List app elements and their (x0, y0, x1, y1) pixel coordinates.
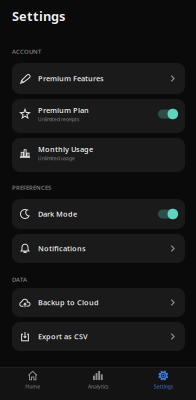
staticText: Notifications (38, 243, 86, 253)
button[interactable]: Dark Mode (158, 208, 178, 219)
staticText: Premium Features (38, 73, 104, 83)
button[interactable]: Analytics (65, 368, 131, 392)
button[interactable]: Monthly Usage (12, 138, 185, 172)
button[interactable]: Premium Features (12, 63, 185, 94)
button[interactable]: Dark Mode (12, 199, 185, 229)
staticText: PREFERENCES (12, 183, 51, 192)
button[interactable]: Settings (131, 368, 196, 392)
staticText: Unlimited usage (38, 155, 75, 162)
button[interactable]: Home (0, 368, 65, 392)
staticText: Analytics (88, 383, 108, 390)
button[interactable]: Notifications (12, 234, 185, 263)
staticText: Dark Mode (38, 209, 77, 219)
button[interactable]: Backup to Cloud (12, 288, 185, 317)
staticText: DATA (12, 275, 27, 284)
button[interactable]: Export as CSV (12, 322, 185, 351)
staticText: Export as CSV (38, 331, 88, 341)
staticText: ACCOUNT (12, 47, 41, 56)
button[interactable]: Premium Plan (12, 99, 185, 133)
staticText: Settings (12, 7, 65, 25)
staticText: Monthly Usage (38, 144, 93, 154)
staticText: Settings (154, 383, 173, 390)
staticText: Home (25, 383, 40, 390)
staticText: Backup to Cloud (38, 297, 99, 307)
staticText: Premium Plan (38, 105, 89, 115)
staticText: Unlimited receipts (38, 116, 79, 123)
button[interactable]: Premium Plan (158, 108, 178, 119)
